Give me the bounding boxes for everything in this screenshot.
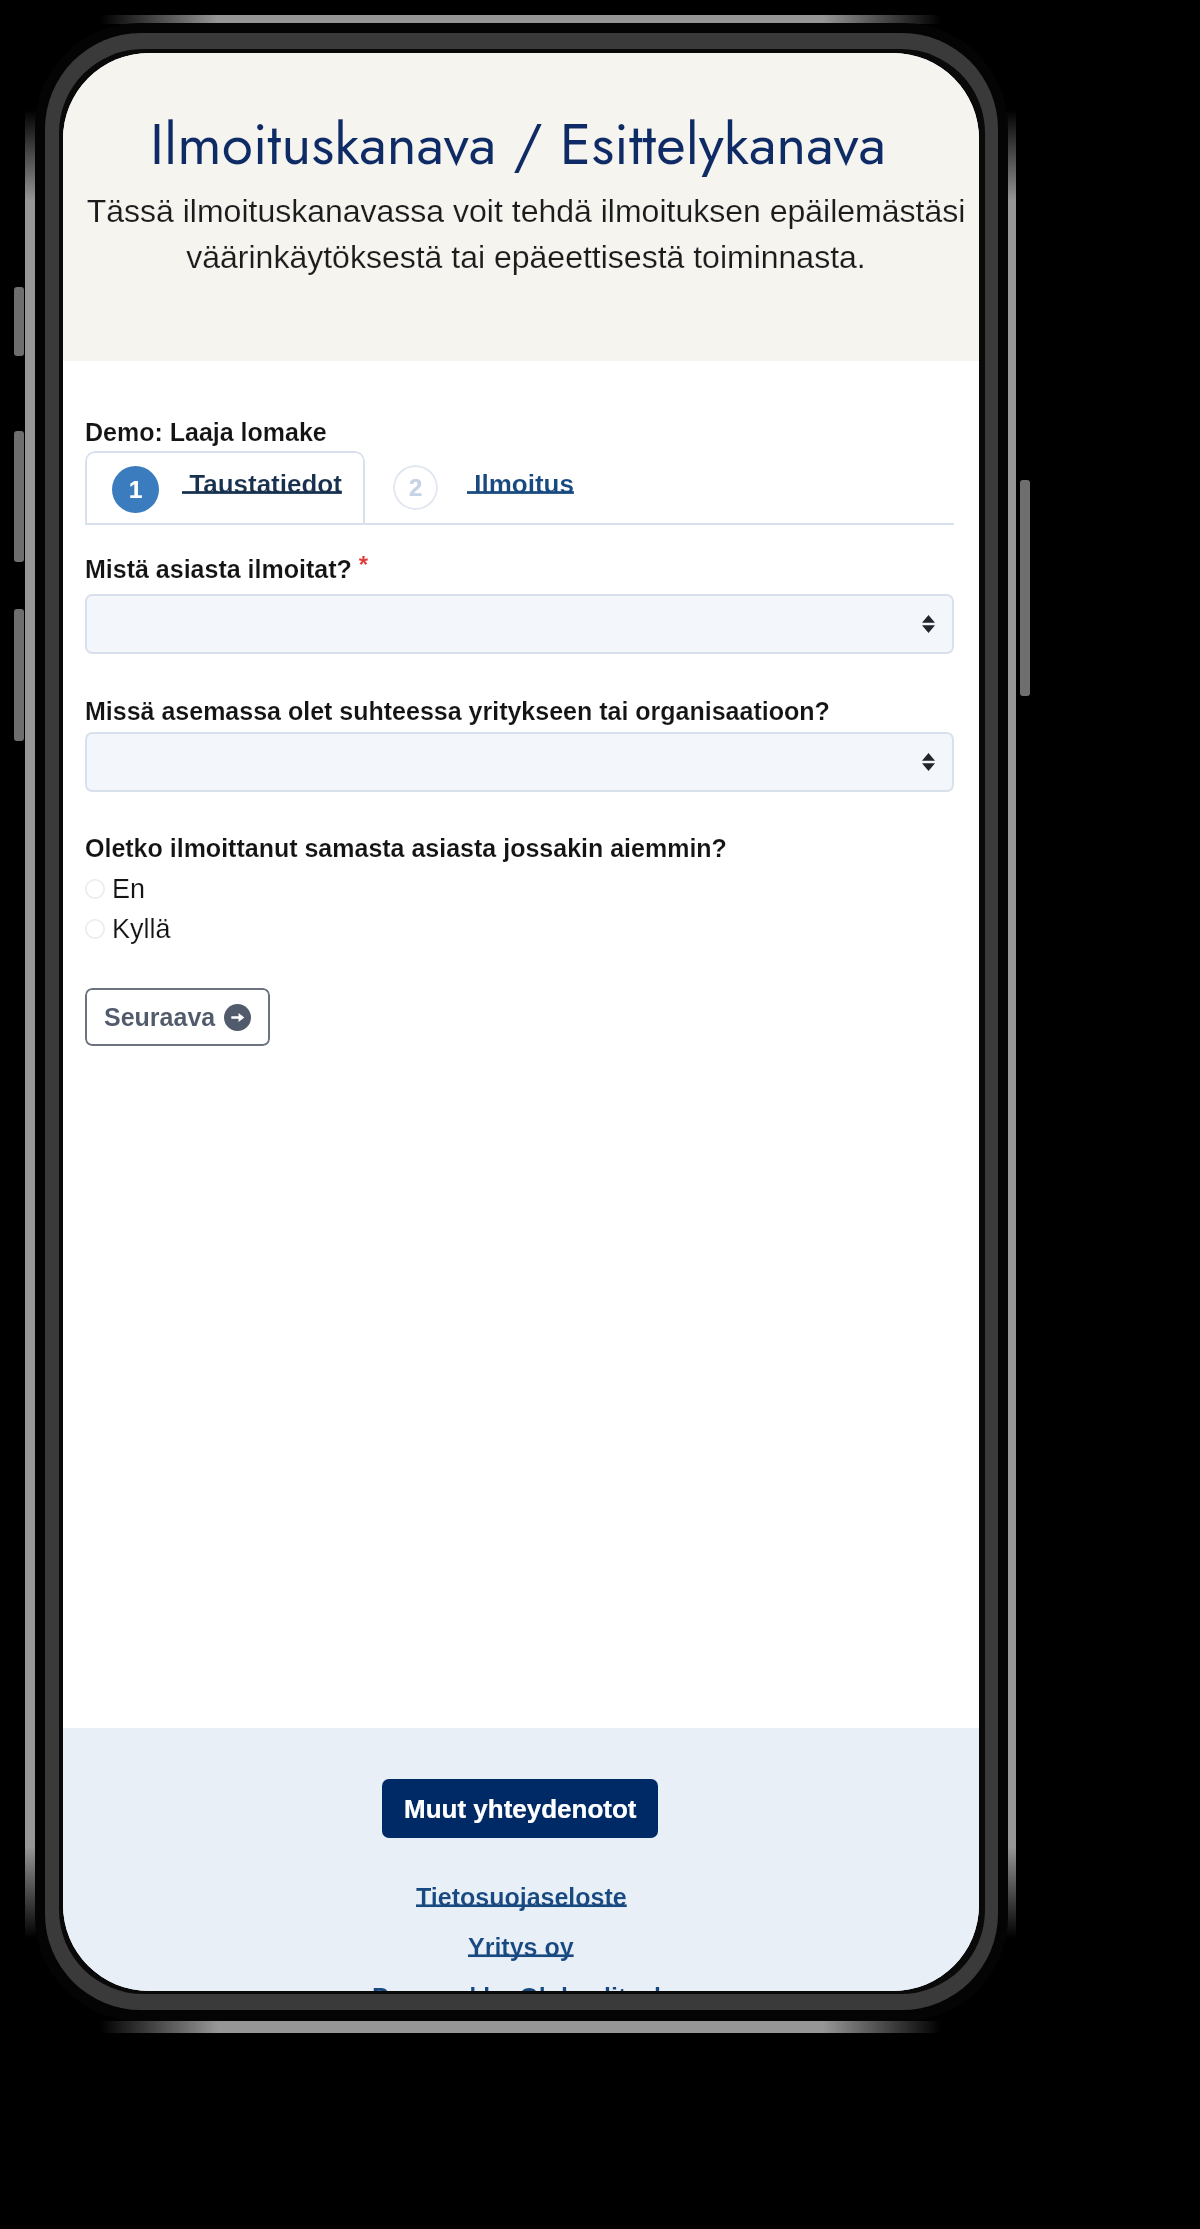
button[interactable]: Tietosuojaseloste (416, 1883, 627, 1911)
staticText: Yritys oy (468, 1933, 574, 1961)
staticText: Oletko ilmoittanut samasta asiasta jossa… (85, 834, 727, 862)
button[interactable]: Seuraava (85, 988, 270, 1046)
button[interactable]: Valitse vaihtoehto (85, 594, 954, 654)
staticText: Demo: Laaja lomake (85, 418, 327, 446)
button[interactable]: Valitse vaihtoehto (85, 732, 954, 792)
staticText: Tässä ilmoituskanavassa voit tehdä ilmoi… (68, 193, 979, 275)
button[interactable]: Muut yhteydenotot (382, 1779, 658, 1838)
button[interactable]: Powered by Globaalitech (372, 1983, 670, 1991)
staticText: 2 (409, 474, 423, 501)
staticText: 1 (129, 476, 143, 503)
staticText: Ilmoitus (467, 469, 574, 498)
staticText: * (352, 551, 369, 578)
button[interactable]: En (85, 873, 146, 905)
staticText: Taustatiedot (182, 469, 342, 498)
staticText: Kyllä (112, 914, 171, 944)
button[interactable]: Taustatiedot (182, 469, 342, 498)
staticText: En (112, 874, 146, 904)
button[interactable] (85, 451, 365, 525)
staticText: Mistä asiasta ilmoitat? (85, 555, 352, 583)
staticText: Missä asemassa olet suhteessa yritykseen… (85, 697, 830, 725)
button[interactable]: Yritys oy (468, 1933, 574, 1961)
button[interactable]: Kyllä (85, 913, 171, 945)
staticText: Seuraava (104, 1003, 216, 1031)
staticText: Powered by Globaalitech (372, 1983, 670, 1991)
staticText: Tietosuojaseloste (416, 1883, 627, 1911)
button[interactable]: Ilmoitus (467, 469, 574, 498)
staticText: Ilmoituskanava / Esittelykanava (63, 103, 976, 185)
staticText: Muut yhteydenotot (404, 1794, 637, 1823)
